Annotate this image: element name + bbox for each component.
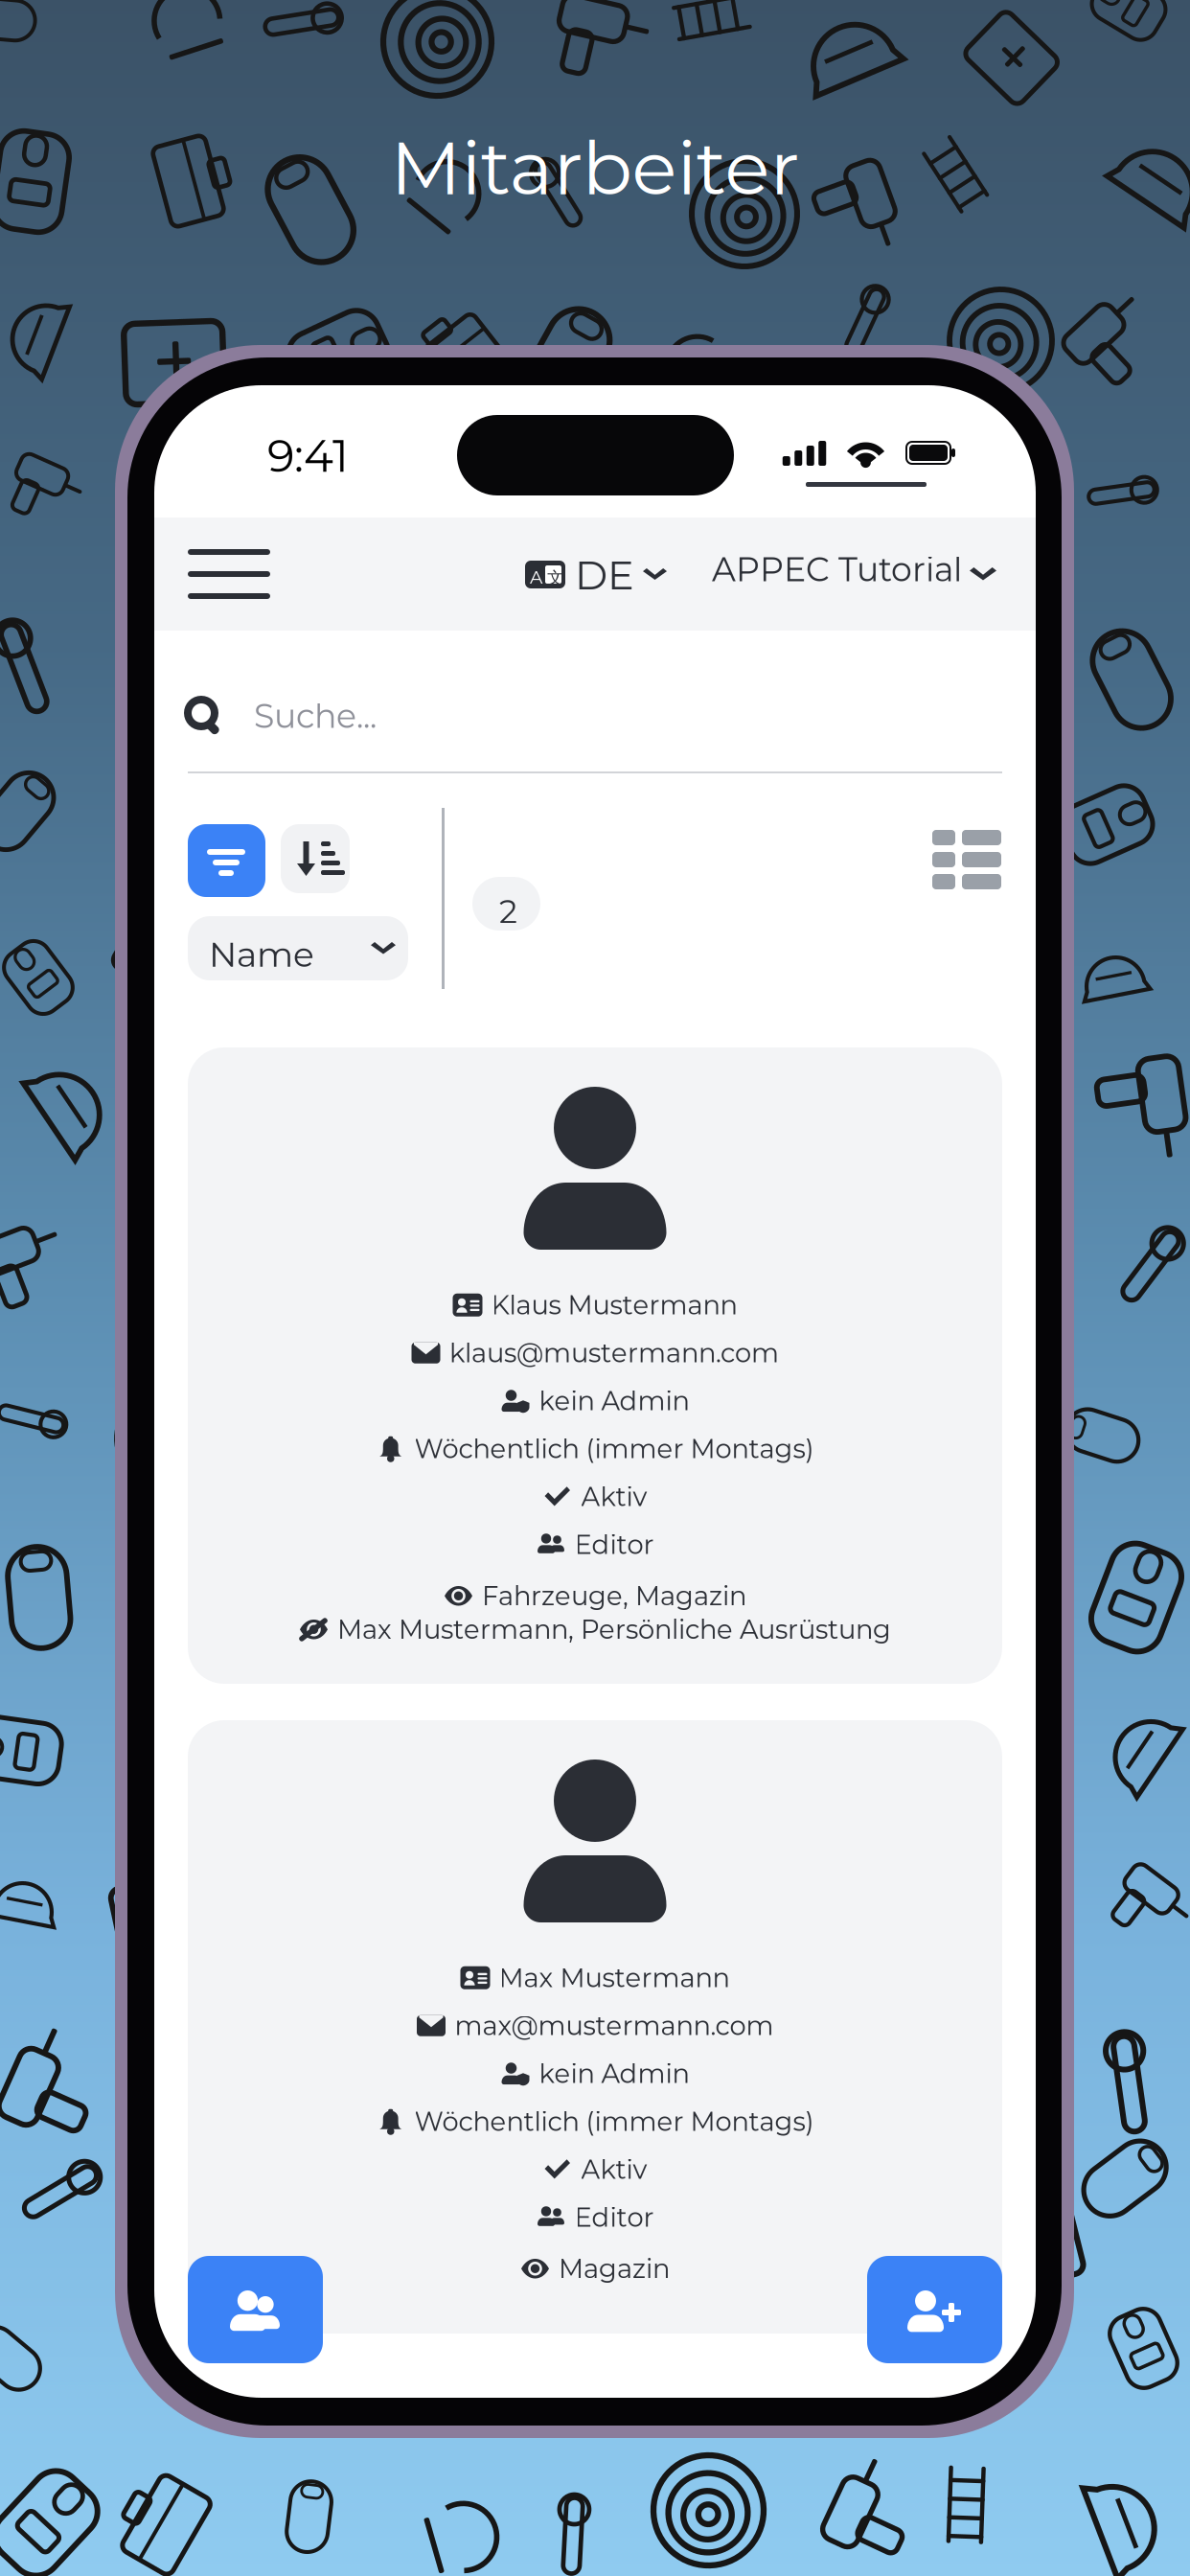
button[interactable]: Change view <box>932 830 1001 889</box>
staticText: kein Admin <box>539 2058 689 2090</box>
button[interactable]: Klaus Mustermann <box>188 1047 1002 1684</box>
button[interactable]: A <box>525 538 669 612</box>
staticText: kein Admin <box>539 1385 689 1417</box>
staticText: max@mustermann.com <box>455 2010 774 2042</box>
button[interactable]: APPEC Tutorial <box>712 538 999 612</box>
staticText: Magazin <box>559 2253 670 2285</box>
staticText: 9:41 <box>267 428 349 483</box>
staticText: Suche... <box>254 696 377 736</box>
button[interactable]: Sort order <box>281 824 350 893</box>
staticText: 文 <box>547 567 563 588</box>
staticText: Editor <box>574 2201 654 2233</box>
staticText: DE <box>575 551 634 599</box>
button[interactable]: Add employee <box>867 2256 1002 2363</box>
staticText: Name <box>209 933 314 975</box>
staticText: Wöchentlich (immer Montags) <box>414 1433 814 1465</box>
button[interactable]: Menu <box>174 524 284 624</box>
staticText: APPEC Tutorial <box>712 549 962 590</box>
staticText: Editor <box>574 1529 654 1561</box>
button[interactable]: Name <box>188 916 408 980</box>
staticText: Fahrzeuge, Magazin <box>482 1580 746 1612</box>
staticText: Max Mustermann, Persönliche Ausrüstung <box>337 1613 891 1645</box>
button[interactable]: Groups <box>188 2256 323 2363</box>
staticText: Klaus Mustermann <box>491 1289 737 1321</box>
staticText: Max Mustermann <box>499 1962 730 1994</box>
staticText: Aktiv <box>581 1481 647 1513</box>
button[interactable]: Filter <box>188 824 265 897</box>
staticText: Aktiv <box>581 2153 647 2185</box>
staticText: 2 <box>499 892 517 931</box>
staticText: klaus@mustermann.com <box>449 1337 779 1369</box>
button[interactable]: Max Mustermann <box>188 1720 1002 2334</box>
staticText: Mitarbeiter <box>390 123 800 213</box>
staticText: A <box>530 566 542 588</box>
staticText: Wöchentlich (immer Montags) <box>414 2106 814 2137</box>
